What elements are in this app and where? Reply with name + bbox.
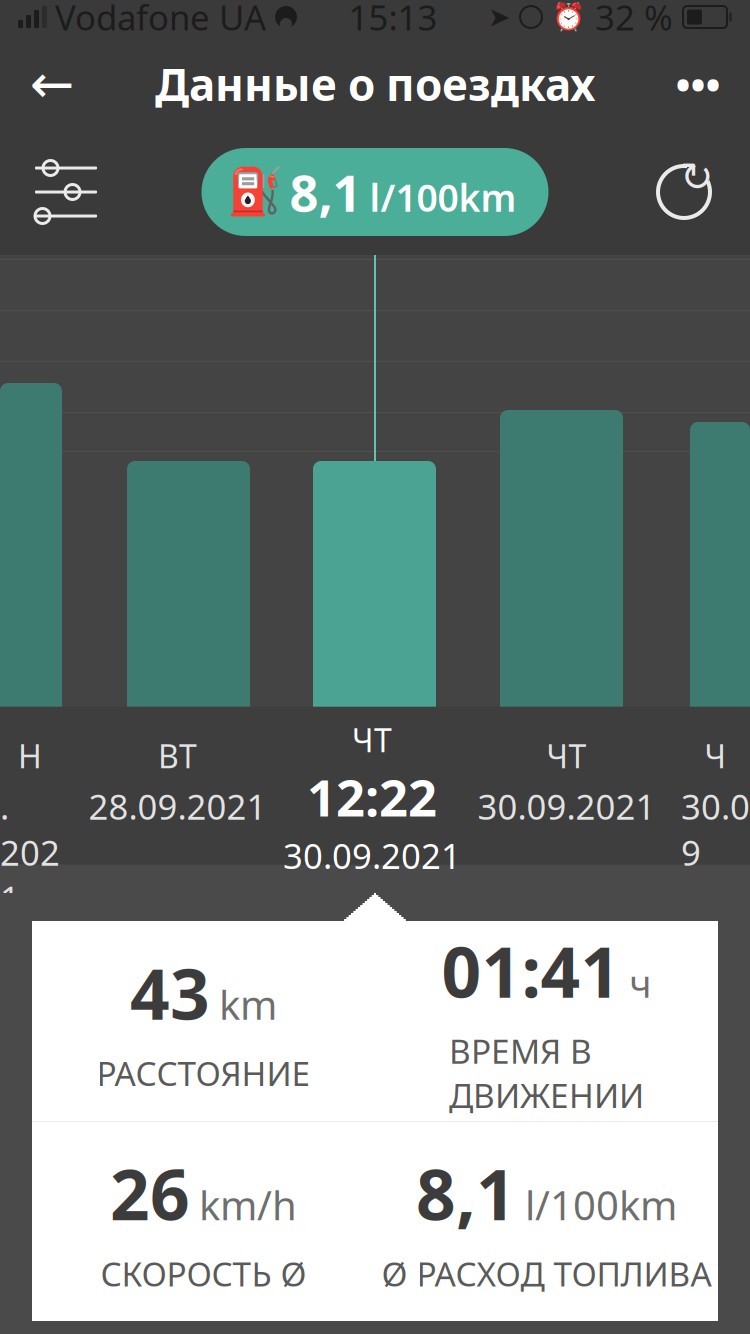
staticText: Vodafone UA [55, 0, 266, 40]
staticText: ЧТ [352, 719, 392, 761]
staticText: km [219, 978, 277, 1031]
button[interactable]: Back [12, 44, 92, 124]
staticText: .2021 [0, 783, 60, 921]
staticText: РАССТОЯНИЕ [96, 1051, 310, 1095]
staticText: ВРЕМЯ В ДВИЖЕНИИ [449, 1029, 644, 1117]
button[interactable]: Refresh [636, 144, 732, 240]
staticText: ↻ [680, 154, 714, 200]
staticText: Ч [704, 735, 726, 777]
staticText: Данные о поездках [155, 55, 595, 113]
staticText: 30.09.2021 [283, 832, 461, 878]
staticText: ВТ [158, 735, 197, 777]
staticText: ⏰ [552, 2, 585, 32]
staticText: Н [18, 735, 42, 777]
staticText: ➤ [488, 2, 510, 32]
button[interactable]: Filter [18, 144, 114, 240]
staticText: 28.09.2021 [88, 783, 266, 829]
button[interactable]: ⛽ [201, 148, 548, 236]
staticText: 12:22 [307, 763, 437, 830]
staticText: ← [29, 54, 74, 114]
staticText: СКОРОСТЬ Ø [100, 1251, 306, 1296]
staticText: 8,1 [289, 158, 361, 226]
staticText: 43 [130, 947, 210, 1039]
staticText: 8,1 [416, 1147, 516, 1239]
staticText: 32 % [595, 0, 673, 40]
staticText: 15:13 [348, 0, 437, 40]
staticText: l/100km [369, 172, 516, 222]
staticText: 30.09 [681, 783, 750, 875]
staticText: ч [629, 958, 651, 1008]
staticText: 26 [110, 1147, 190, 1239]
button[interactable]: More options [658, 44, 738, 124]
staticText: Ø РАСХОД ТОПЛИВА [381, 1251, 711, 1296]
staticText: ⛽ [226, 166, 282, 218]
staticText: ЧТ [546, 735, 586, 777]
staticText: km/h [199, 1178, 297, 1231]
staticText: 30.09.2021 [477, 783, 655, 829]
staticText: ••• [675, 57, 720, 110]
staticText: l/100km [525, 1178, 677, 1231]
staticText: 01:41 [441, 925, 620, 1017]
